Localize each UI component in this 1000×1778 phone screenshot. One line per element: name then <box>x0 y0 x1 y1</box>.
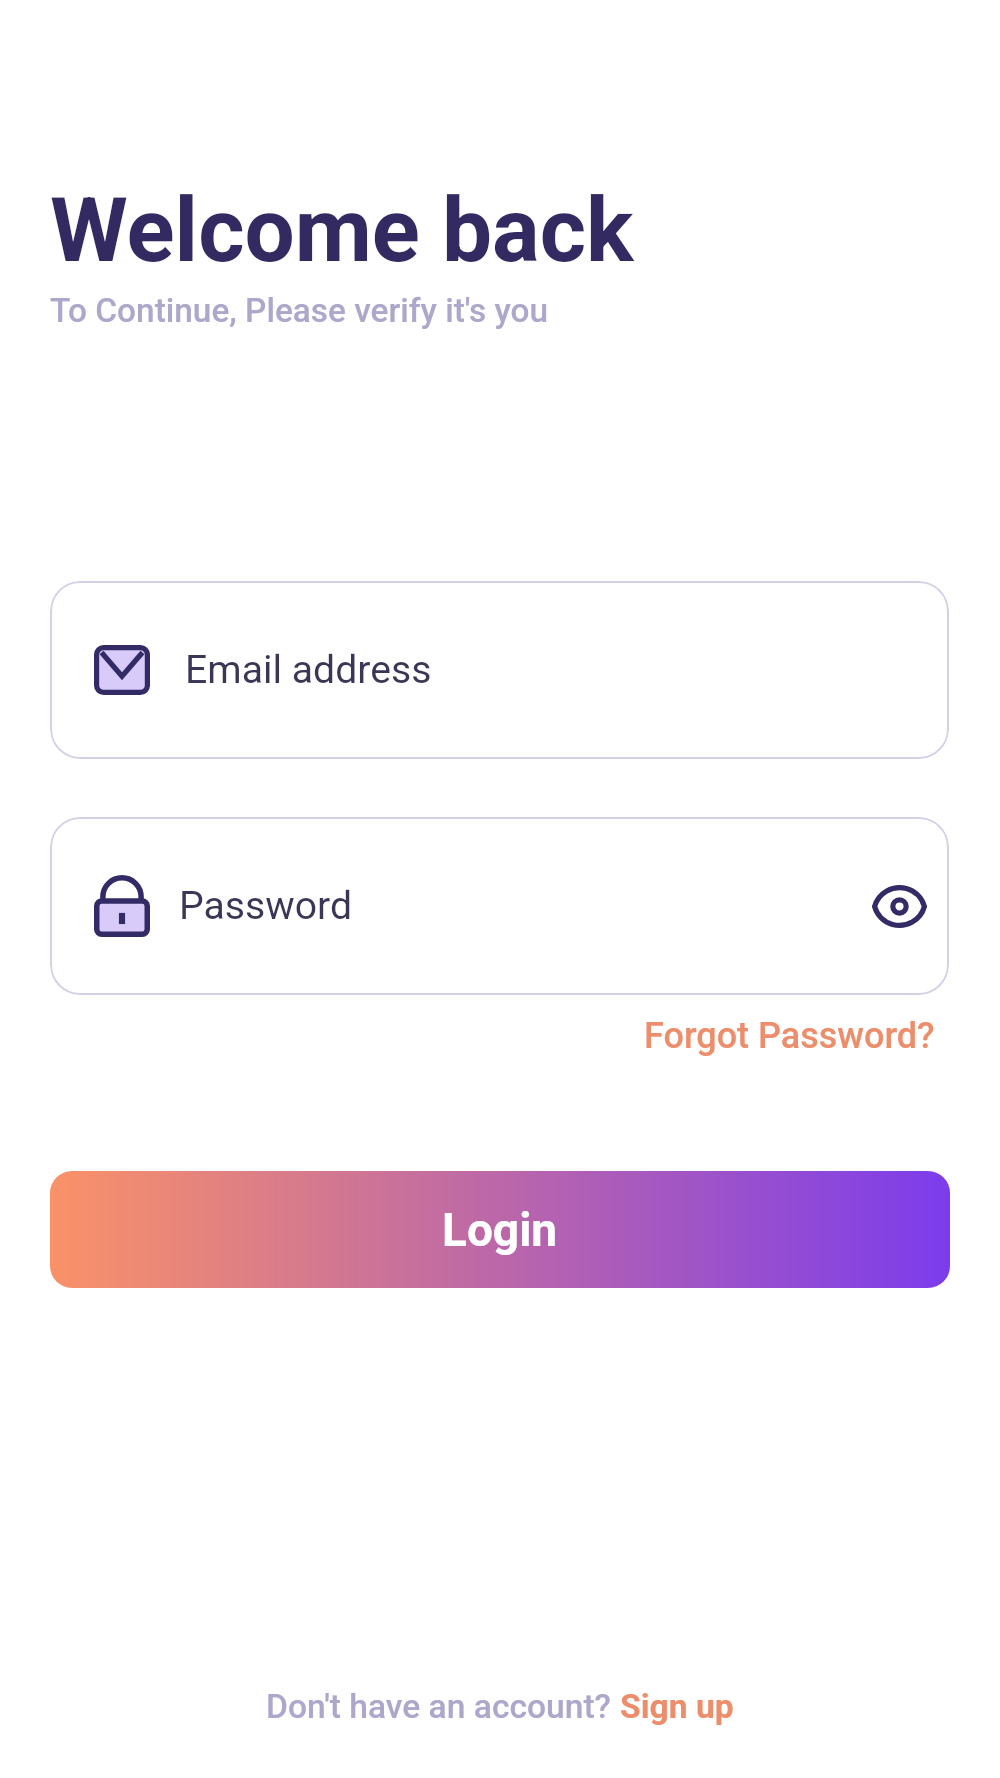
button[interactable]: Email address <box>50 581 949 759</box>
button[interactable]: Password <box>50 817 949 995</box>
staticText: Email address <box>185 647 432 693</box>
staticText: To Continue, Please verify it's you <box>50 291 549 330</box>
staticText: Forgot Password? <box>644 1015 935 1057</box>
button[interactable]: Login <box>50 1171 950 1288</box>
staticText: Welcome back <box>50 178 634 282</box>
staticText: Don't have an account? <box>266 1687 620 1726</box>
button[interactable]: Show password <box>854 861 944 951</box>
staticText: Login <box>442 1203 558 1257</box>
staticText: Password <box>179 883 353 929</box>
button[interactable]: Forgot Password? <box>634 1009 945 1063</box>
staticText: Sign up <box>620 1687 734 1726</box>
button[interactable]: Sign up <box>620 1687 734 1726</box>
